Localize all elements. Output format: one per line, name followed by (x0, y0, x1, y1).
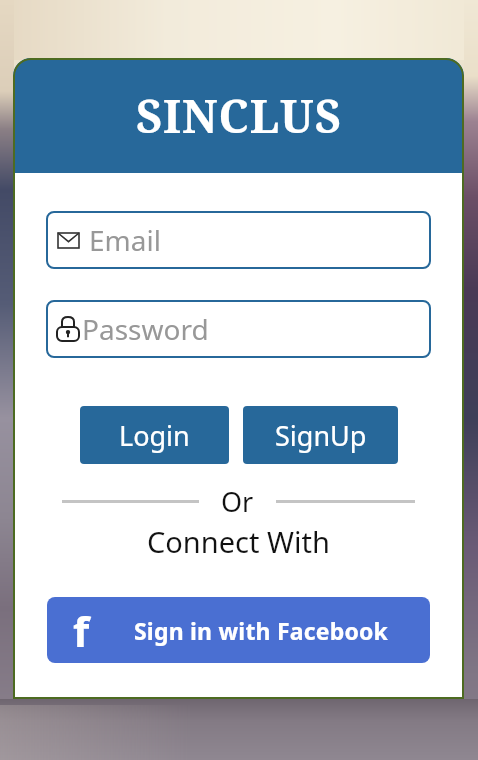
staticText: Or (221, 483, 254, 520)
staticText: SignUp (275, 417, 367, 454)
button[interactable]: Password (46, 300, 431, 358)
staticText: Login (119, 417, 190, 454)
button[interactable]: f (47, 597, 430, 663)
staticText: Password (82, 310, 209, 348)
staticText: Connect With (147, 522, 330, 561)
staticText: Sign in with Facebook (134, 615, 389, 646)
staticText: Email (89, 221, 161, 259)
staticText: SINCLUS (136, 85, 342, 146)
button[interactable]: SignUp (243, 406, 398, 464)
staticText: f (73, 602, 90, 659)
button[interactable]: Email (46, 211, 431, 269)
button[interactable]: Login (80, 406, 229, 464)
